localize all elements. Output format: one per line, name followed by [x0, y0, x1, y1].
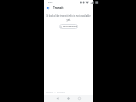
button[interactable]: Home	[66, 96, 71, 101]
staticText: yet.	[44, 18, 93, 22]
button[interactable]: Send feedback	[59, 24, 78, 29]
staticText: It looks like transit info is not availa…	[44, 14, 93, 18]
button[interactable]: Back	[55, 96, 60, 101]
button[interactable]: Recent apps	[77, 96, 82, 101]
staticText: Transit	[53, 6, 64, 10]
button[interactable]: Back	[45, 5, 51, 11]
staticText: Terms • Privacy	[46, 90, 66, 93]
staticText: Send feedback	[63, 25, 77, 28]
staticText: 9:41	[48, 1, 53, 4]
